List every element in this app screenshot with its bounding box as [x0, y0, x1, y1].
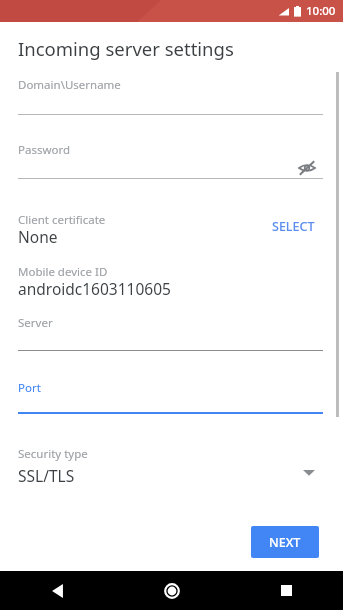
staticText: androidc1603110605: [18, 278, 171, 299]
button[interactable]: Recent apps: [229, 571, 343, 610]
staticText: None: [18, 226, 58, 247]
staticText: Port: [18, 380, 41, 396]
button[interactable]: SELECT: [272, 214, 315, 238]
staticText: Domain\Username: [18, 77, 121, 93]
button[interactable]: Home: [115, 571, 229, 610]
staticText: SELECT: [272, 218, 315, 235]
staticText: Incoming server settings: [18, 36, 234, 61]
staticText: Security type: [18, 446, 88, 462]
staticText: 10:00: [306, 3, 336, 19]
button[interactable]: Back: [0, 571, 115, 610]
button[interactable]: Show password: [293, 155, 321, 181]
staticText: SSL/TLS: [18, 465, 75, 486]
staticText: Client certificate: [18, 212, 106, 228]
staticText: Password: [18, 142, 71, 158]
staticText: Mobile device ID: [18, 264, 108, 280]
staticText: NEXT: [269, 534, 301, 551]
button[interactable]: SSL/TLS: [0, 462, 343, 490]
staticText: Server: [18, 315, 53, 331]
button[interactable]: NEXT: [251, 526, 319, 558]
